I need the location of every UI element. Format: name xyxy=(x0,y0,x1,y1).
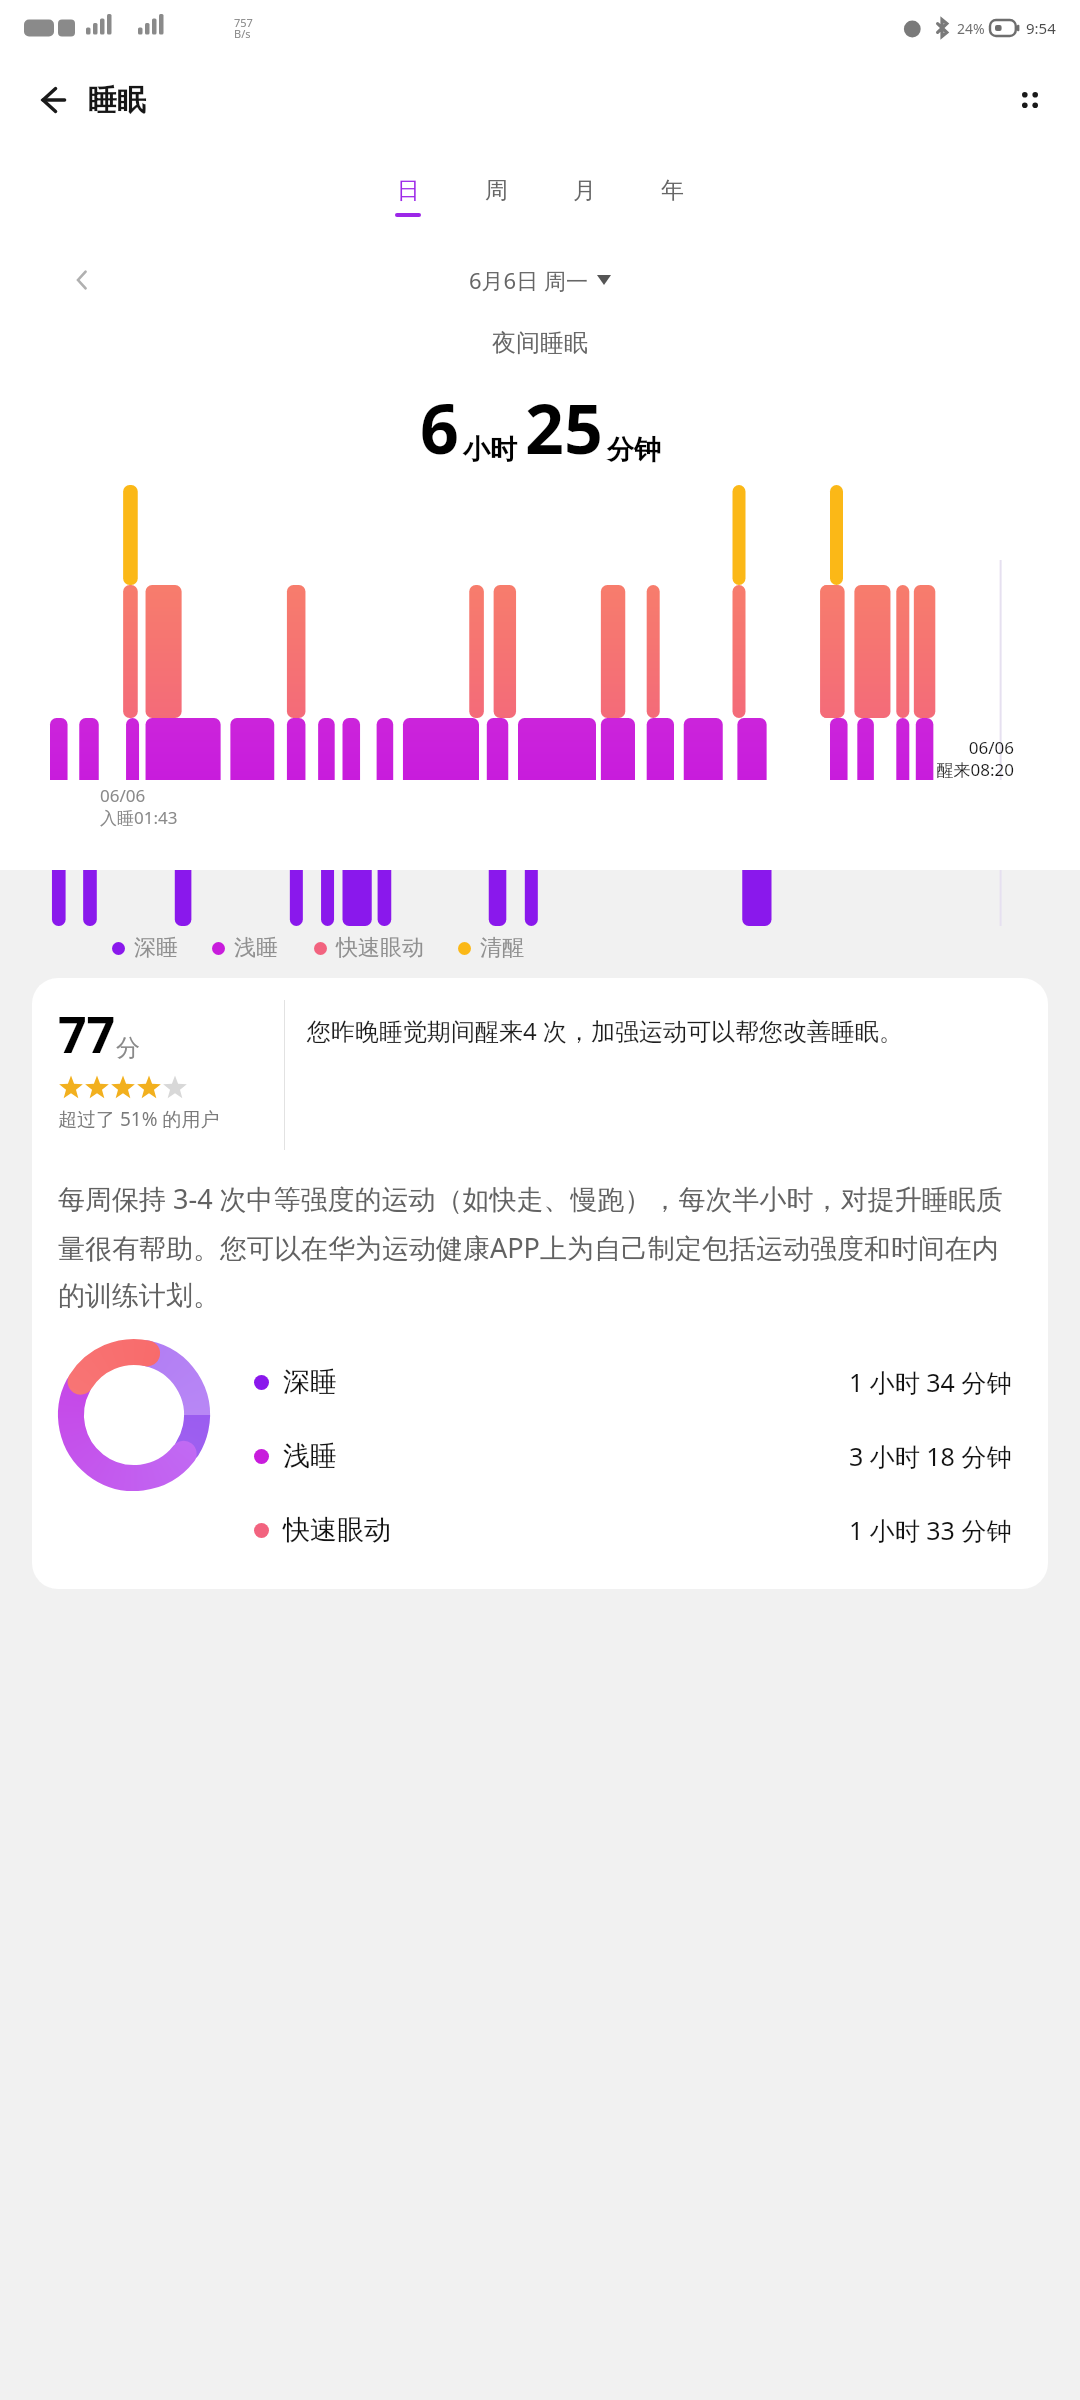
staticText: 每周保持 3-4 次中等强度的运动（如快走、慢跑），每次半小时，对提升睡眠质量很… xyxy=(58,1180,1022,1313)
staticText: 日 xyxy=(397,176,420,205)
button[interactable]: 周 xyxy=(452,176,540,217)
button[interactable]: 快速眼动 xyxy=(314,934,424,962)
button[interactable]: More options xyxy=(1002,72,1058,128)
staticText: 深睡 xyxy=(283,1365,337,1399)
staticText: 夜间睡眠 xyxy=(492,328,588,358)
button[interactable]: 深睡 xyxy=(112,934,178,962)
staticText: 06/06 醒来08:20 xyxy=(936,736,1014,781)
staticText: 深睡 xyxy=(134,934,178,962)
staticText: 24% xyxy=(957,19,985,38)
staticText: 浅睡 xyxy=(283,1439,337,1473)
staticText: 清醒 xyxy=(480,934,524,962)
staticText: 睡眠 xyxy=(88,82,146,119)
staticText: 周 xyxy=(485,176,508,205)
button[interactable]: 清醒 xyxy=(458,934,524,962)
staticText: 3 小时 18 分钟 xyxy=(849,1439,1012,1473)
staticText: 超过了 51% 的用户 xyxy=(58,1106,220,1132)
button[interactable]: Previous day xyxy=(60,258,104,302)
staticText: 1 小时 33 分钟 xyxy=(849,1513,1012,1547)
button[interactable]: 快速眼动 xyxy=(254,1493,1022,1567)
staticText: 77 xyxy=(58,1000,116,1068)
staticText: 您昨晚睡觉期间醒来4 次，加强运动可以帮您改善睡眠。 xyxy=(307,1014,903,1047)
button[interactable]: 深睡 xyxy=(254,1345,1022,1419)
staticText: 9:54 xyxy=(1026,18,1056,38)
staticText: 757 B/s xyxy=(234,15,253,42)
button[interactable]: 浅睡 xyxy=(212,934,278,962)
staticText: 快速眼动 xyxy=(336,934,424,962)
staticText: 6月6日 周一 xyxy=(469,265,588,295)
staticText: 1 小时 34 分钟 xyxy=(849,1365,1012,1399)
button[interactable]: 日 xyxy=(364,176,452,217)
staticText: 分钟 xyxy=(607,433,661,467)
staticText: 快速眼动 xyxy=(283,1513,391,1547)
staticText: 小时 xyxy=(463,433,517,467)
staticText: 月 xyxy=(573,176,596,205)
staticText: 6 xyxy=(420,381,459,474)
other: Bluetooth xyxy=(931,17,953,39)
button[interactable]: 月 xyxy=(540,176,628,217)
staticText: 06/06 入睡01:43 xyxy=(100,784,178,829)
staticText: 分 xyxy=(116,1033,140,1063)
button[interactable]: 浅睡 xyxy=(254,1419,1022,1493)
staticText: 浅睡 xyxy=(234,934,278,962)
button[interactable]: Back xyxy=(24,72,80,128)
staticText: 年 xyxy=(661,176,684,205)
other: Alarm xyxy=(897,18,931,38)
staticText: 25 xyxy=(525,381,603,474)
button[interactable]: 年 xyxy=(628,176,716,217)
